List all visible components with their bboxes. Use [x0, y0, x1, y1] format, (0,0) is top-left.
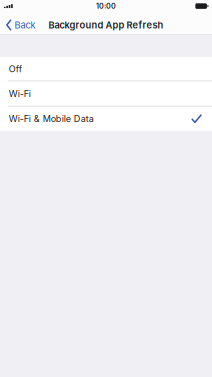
staticText: Off [9, 63, 22, 74]
staticText: 10:00 [96, 2, 116, 10]
button[interactable]: Off [0, 57, 212, 81]
button[interactable]: Wi-Fi & Mobile Data [0, 106, 212, 131]
staticText: Wi-Fi & Mobile Data [9, 113, 94, 124]
button[interactable]: Wi-Fi [0, 81, 212, 106]
staticText: Background App Refresh [48, 19, 163, 31]
staticText: Wi-Fi [9, 88, 31, 99]
button[interactable]: Back [0, 16, 39, 34]
staticText: Back [14, 19, 35, 31]
